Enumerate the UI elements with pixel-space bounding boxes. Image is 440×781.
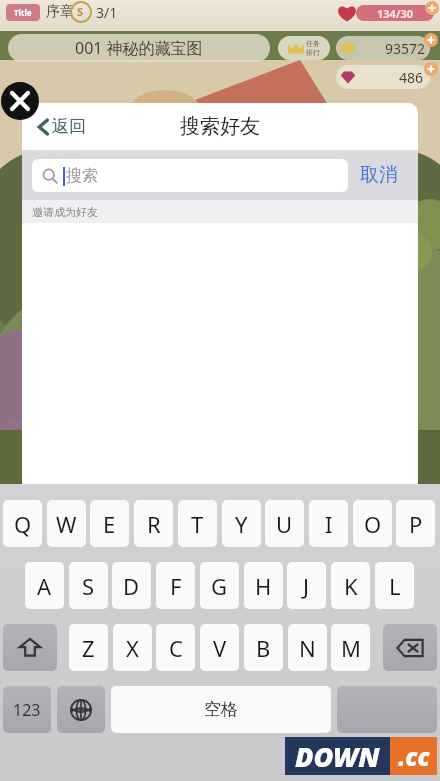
staticText: J: [303, 571, 310, 601]
button[interactable]: G: [200, 562, 239, 609]
staticText: 123: [13, 699, 41, 721]
staticText: 134/30: [377, 6, 414, 21]
staticText: I: [325, 509, 333, 539]
button[interactable]: Close: [1, 82, 39, 120]
button[interactable]: O: [353, 500, 392, 547]
staticText: B: [256, 633, 271, 663]
button[interactable]: F: [156, 562, 195, 609]
button[interactable]: Key: [3, 624, 57, 671]
staticText: 3/1: [96, 3, 118, 22]
button[interactable]: Add: [425, 1, 439, 15]
button[interactable]: Key: [383, 624, 437, 671]
staticText: T: [191, 509, 204, 539]
staticText: Y: [235, 509, 248, 539]
button[interactable]: Key: [57, 686, 105, 733]
button[interactable]: V: [200, 624, 239, 671]
button[interactable]: 486: [336, 65, 430, 89]
staticText: 排行: [306, 48, 320, 57]
staticText: Q: [14, 509, 32, 539]
button[interactable]: L: [375, 562, 414, 609]
button[interactable]: D: [112, 562, 151, 609]
button[interactable]: Y: [222, 500, 261, 547]
button[interactable]: M: [331, 624, 370, 671]
staticText: P: [409, 509, 423, 539]
button[interactable]: J: [287, 562, 326, 609]
staticText: W: [56, 509, 77, 539]
button[interactable]: 返回: [34, 103, 90, 150]
staticText: 取消: [360, 163, 398, 187]
staticText: S: [77, 4, 84, 19]
staticText: A: [37, 571, 52, 601]
button[interactable]: E: [90, 500, 129, 547]
staticText: M: [341, 633, 361, 663]
staticText: X: [126, 633, 139, 663]
button[interactable]: I: [309, 500, 348, 547]
staticText: 邀请成为好友: [32, 205, 98, 219]
staticText: G: [211, 571, 228, 601]
button[interactable]: 001 神秘的藏宝图: [8, 34, 270, 62]
staticText: 93572: [385, 39, 426, 58]
staticText: 搜索: [66, 166, 98, 186]
button[interactable]: Return: [337, 686, 437, 733]
staticText: D: [123, 571, 140, 601]
button[interactable]: T: [178, 500, 217, 547]
button[interactable]: 任务排行: [278, 36, 330, 60]
staticText: 搜索好友: [22, 114, 418, 139]
button[interactable]: C: [156, 624, 195, 671]
staticText: Title: [14, 7, 32, 18]
button[interactable]: W: [47, 500, 86, 547]
staticText: R: [147, 509, 161, 539]
staticText: 486: [399, 68, 424, 87]
staticText: 001 神秘的藏宝图: [75, 37, 203, 59]
staticText: DOWN: [295, 738, 380, 775]
staticText: 返回: [52, 116, 86, 137]
button[interactable]: X: [113, 624, 152, 671]
staticText: F: [170, 571, 182, 601]
staticText: E: [103, 509, 116, 539]
button[interactable]: 搜索: [32, 159, 348, 192]
staticText: Z: [82, 633, 95, 663]
button[interactable]: S: [69, 562, 108, 609]
staticText: V: [213, 633, 227, 663]
staticText: U: [276, 509, 293, 539]
staticText: L: [389, 571, 401, 601]
button[interactable]: Title: [6, 4, 40, 21]
staticText: 空格: [204, 699, 238, 720]
staticText: N: [299, 633, 316, 663]
button[interactable]: 取消: [354, 150, 404, 200]
staticText: S: [82, 571, 95, 601]
staticText: H: [255, 571, 272, 601]
staticText: K: [344, 571, 358, 601]
button[interactable]: R: [134, 500, 173, 547]
staticText: 任务: [306, 39, 320, 48]
staticText: 序章: [46, 3, 74, 21]
button[interactable]: 123: [3, 686, 51, 733]
button[interactable]: P: [396, 500, 435, 547]
button[interactable]: B: [244, 624, 283, 671]
button[interactable]: 93572: [336, 36, 430, 60]
staticText: C: [169, 633, 183, 663]
button[interactable]: A: [25, 562, 64, 609]
button[interactable]: 空格: [111, 686, 331, 733]
staticText: O: [364, 509, 382, 539]
button[interactable]: H: [244, 562, 283, 609]
button[interactable]: Z: [69, 624, 108, 671]
button[interactable]: U: [265, 500, 304, 547]
button[interactable]: N: [288, 624, 327, 671]
button[interactable]: Add: [424, 33, 438, 47]
staticText: .cc: [398, 740, 430, 773]
button[interactable]: Add: [424, 62, 438, 76]
button[interactable]: K: [331, 562, 370, 609]
button[interactable]: Q: [3, 500, 42, 547]
